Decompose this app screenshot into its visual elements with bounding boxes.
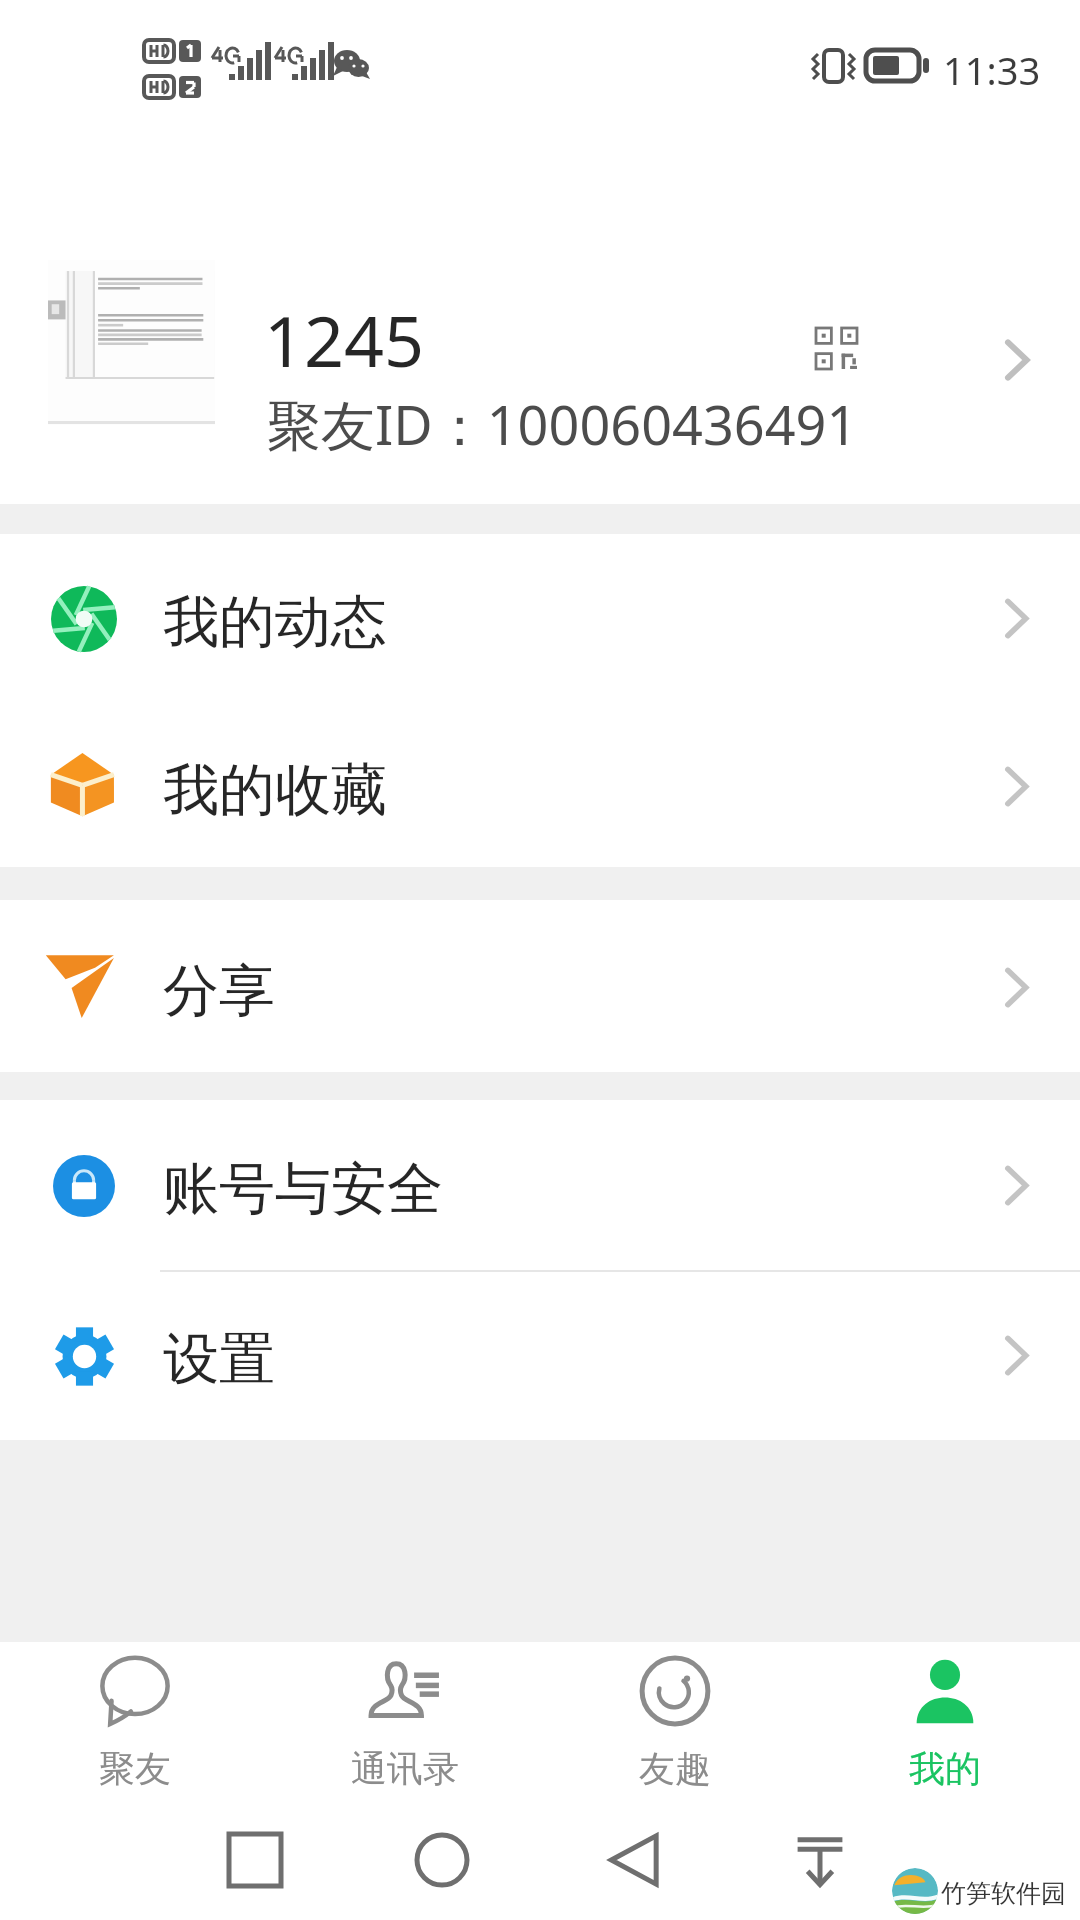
button[interactable]: 1245 (0, 140, 1080, 504)
staticText: 聚友ID：100060436491 (267, 387, 858, 461)
button[interactable]: Home (398, 1816, 486, 1904)
button[interactable]: Back (592, 1816, 680, 1904)
button[interactable]: Hide navigation bar (776, 1816, 864, 1904)
staticText: 我的动态 (163, 587, 387, 658)
button[interactable]: 分享 (0, 900, 1080, 1072)
button[interactable]: 聚友 (0, 1642, 270, 1792)
staticText: 竹笋软件园 (941, 1878, 1066, 1909)
button[interactable]: 我的收藏 (0, 703, 1080, 867)
button[interactable]: 通讯录 (270, 1642, 540, 1792)
staticText: 通讯录 (351, 1746, 459, 1791)
staticText: 我的 (909, 1746, 981, 1791)
staticText: 聚友 (99, 1746, 171, 1791)
button[interactable]: 我的 (810, 1642, 1080, 1792)
staticText: 设置 (163, 1324, 275, 1395)
staticText: 分享 (163, 956, 275, 1027)
button[interactable]: My QR code (788, 300, 884, 396)
button[interactable]: 友趣 (540, 1642, 810, 1792)
staticText: 友趣 (639, 1746, 711, 1791)
button[interactable]: 设置 (0, 1270, 1080, 1440)
staticText: 我的收藏 (163, 755, 387, 826)
button[interactable]: 账号与安全 (0, 1100, 1080, 1270)
staticText: 1245 (264, 292, 425, 387)
button[interactable]: Recents (211, 1816, 299, 1904)
staticText: 11:33 (943, 44, 1041, 96)
staticText: 账号与安全 (163, 1154, 443, 1225)
button[interactable]: 我的动态 (0, 534, 1080, 867)
